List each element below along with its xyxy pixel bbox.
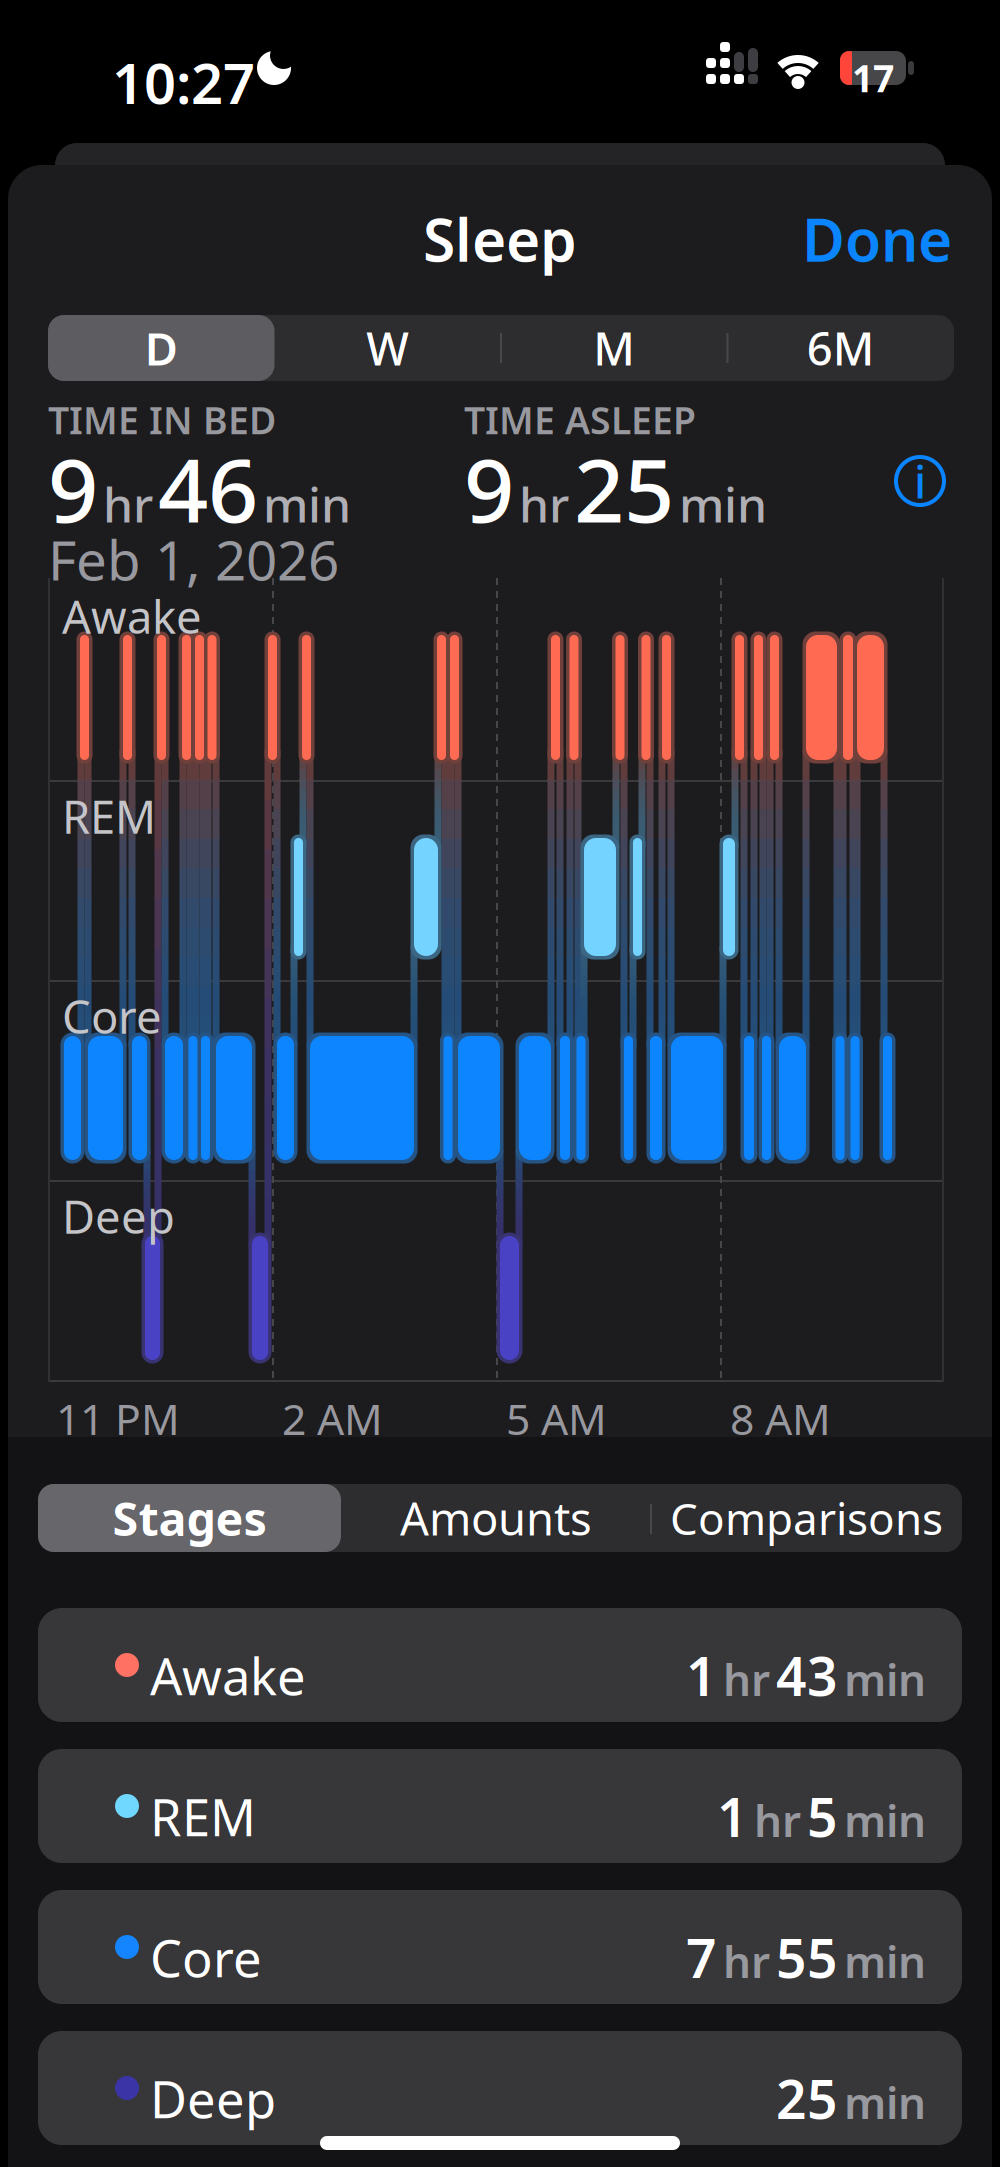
button[interactable]: W <box>274 315 501 381</box>
staticText: Feb 1, 2026 <box>48 523 339 596</box>
staticText: hr <box>754 1791 801 1849</box>
staticText: 43 <box>776 1640 838 1711</box>
staticText: Comparisons <box>670 1489 943 1547</box>
button[interactable]: Deep <box>38 2031 962 2145</box>
button[interactable]: D <box>48 315 274 381</box>
staticText: 17 <box>852 53 894 103</box>
staticText: Awake <box>150 1642 306 1709</box>
staticText: Core <box>150 1924 262 1991</box>
staticText: TIME IN BED <box>48 395 276 445</box>
staticText: 5 AM <box>506 1390 607 1447</box>
staticText: min <box>844 1791 926 1849</box>
staticText: TIME ASLEEP <box>464 395 696 445</box>
staticText: 25 <box>574 430 674 547</box>
button[interactable]: Awake <box>38 1608 962 1722</box>
staticText: 2 AM <box>282 1390 383 1447</box>
staticText: Stages <box>112 1487 266 1549</box>
staticText: min <box>263 472 351 536</box>
button[interactable]: Comparisons <box>651 1484 962 1552</box>
staticText: hr <box>723 1650 770 1708</box>
staticText: 9 <box>464 430 514 547</box>
button[interactable]: Stages <box>38 1484 341 1552</box>
staticText: 8 AM <box>730 1390 831 1447</box>
staticText: 46 <box>158 430 258 547</box>
button[interactable]: REM <box>38 1749 962 1863</box>
staticText: min <box>679 472 767 536</box>
button[interactable]: 6M <box>727 315 954 381</box>
staticText: 5 <box>807 1781 838 1852</box>
staticText: 11 PM <box>56 1390 180 1447</box>
staticText: Amounts <box>400 1488 592 1548</box>
button[interactable]: Done <box>802 200 952 278</box>
staticText: hr <box>103 472 153 536</box>
staticText: D <box>145 318 178 378</box>
staticText: min <box>844 1650 926 1708</box>
button[interactable]: More info <box>896 457 944 505</box>
staticText: 1 <box>717 1781 748 1852</box>
staticText: 25 <box>776 2063 838 2134</box>
staticText: hr <box>723 1932 770 1990</box>
staticText: REM <box>62 786 156 846</box>
button[interactable]: Amounts <box>341 1484 651 1552</box>
staticText: 10:27 <box>112 45 255 119</box>
staticText: hr <box>519 472 569 536</box>
staticText: 1 <box>686 1640 717 1711</box>
staticText: Sleep <box>423 200 577 278</box>
staticText: 9 <box>48 430 98 547</box>
staticText: i <box>914 451 926 511</box>
staticText: Awake <box>62 586 202 646</box>
button[interactable]: M <box>501 315 727 381</box>
staticText: Deep <box>62 1186 175 1246</box>
staticText: Deep <box>150 2065 276 2132</box>
staticText: 6M <box>807 318 875 378</box>
staticText: W <box>366 318 409 378</box>
staticText: M <box>593 318 635 378</box>
button[interactable]: Core <box>38 1890 962 2004</box>
staticText: REM <box>150 1783 256 1850</box>
staticText: 55 <box>776 1922 838 1993</box>
staticText: min <box>844 2073 926 2131</box>
staticText: min <box>844 1932 926 1990</box>
staticText: Core <box>62 986 162 1046</box>
staticText: 7 <box>686 1922 717 1993</box>
staticText: Done <box>802 200 952 278</box>
